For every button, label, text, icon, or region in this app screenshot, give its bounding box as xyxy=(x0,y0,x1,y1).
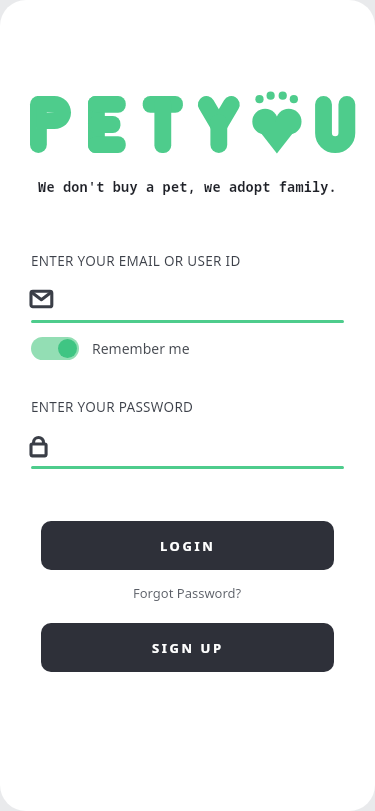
staticText: ENTER YOUR PASSWORD xyxy=(31,398,194,416)
button[interactable]: Password xyxy=(31,432,344,469)
staticText: Remember me xyxy=(92,339,190,358)
other: Password xyxy=(31,432,57,458)
other: Email xyxy=(31,286,57,312)
button[interactable]: SIGN UP xyxy=(41,623,334,672)
button[interactable]: Email xyxy=(31,286,344,323)
staticText: Forgot Password? xyxy=(133,584,242,602)
staticText: ENTER YOUR EMAIL OR USER ID xyxy=(31,252,241,270)
staticText: We don't buy a pet, we adopt family. xyxy=(38,178,337,196)
staticText: SIGN UP xyxy=(152,639,224,657)
button[interactable]: Remember me xyxy=(31,337,190,360)
staticText: LOGIN xyxy=(160,537,216,555)
button[interactable]: LOGIN xyxy=(41,521,334,570)
button[interactable]: Forgot Password? xyxy=(125,581,250,605)
